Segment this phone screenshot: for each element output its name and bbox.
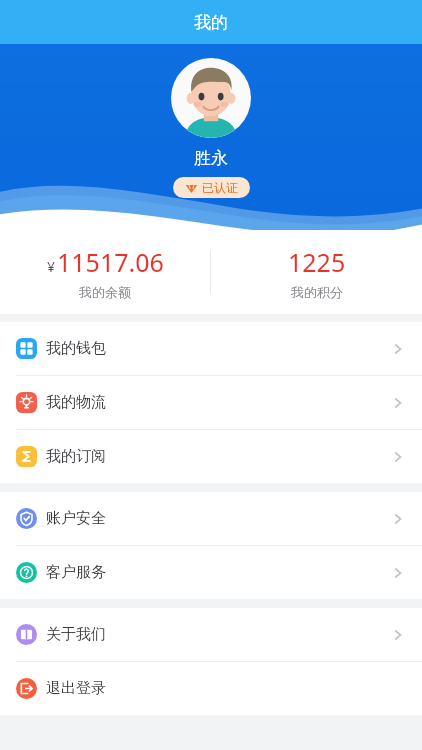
button[interactable]: 我的订阅 <box>0 430 422 483</box>
staticText: 已认证 <box>202 180 238 195</box>
staticText: 我的物流 <box>46 393 106 412</box>
button[interactable]: 客户服务 <box>0 546 422 599</box>
staticText: 胜永 <box>194 148 228 169</box>
staticText: 11517.06 <box>57 245 164 279</box>
staticText: 我的积分 <box>291 284 343 300</box>
other: 打开 <box>390 395 406 411</box>
button[interactable]: 我的钱包 <box>0 322 422 375</box>
staticText: 账户安全 <box>46 509 106 528</box>
other: 打开 <box>390 449 406 465</box>
other: 打开 <box>390 627 406 643</box>
button[interactable]: ¥ <box>0 245 210 300</box>
button[interactable]: 退出登录 <box>0 662 422 715</box>
button[interactable]: 账户安全 <box>0 492 422 545</box>
other: 打开 <box>390 511 406 527</box>
staticText: 关于我们 <box>46 625 106 644</box>
staticText: 退出登录 <box>46 679 106 698</box>
other: 打开 <box>390 341 406 357</box>
button[interactable]: 1225 <box>211 245 422 300</box>
other: 打开 <box>390 565 406 581</box>
staticText: 1225 <box>288 245 346 279</box>
button[interactable]: 关于我们 <box>0 608 422 661</box>
staticText: 客户服务 <box>46 563 106 582</box>
staticText: 我的 <box>194 12 228 33</box>
staticText: 我的订阅 <box>46 447 106 466</box>
staticText: 我的钱包 <box>46 339 106 358</box>
button[interactable]: 已认证 <box>173 177 250 198</box>
staticText: ¥ <box>47 257 56 276</box>
staticText: 我的余额 <box>79 284 131 300</box>
button[interactable]: 我的物流 <box>0 376 422 429</box>
